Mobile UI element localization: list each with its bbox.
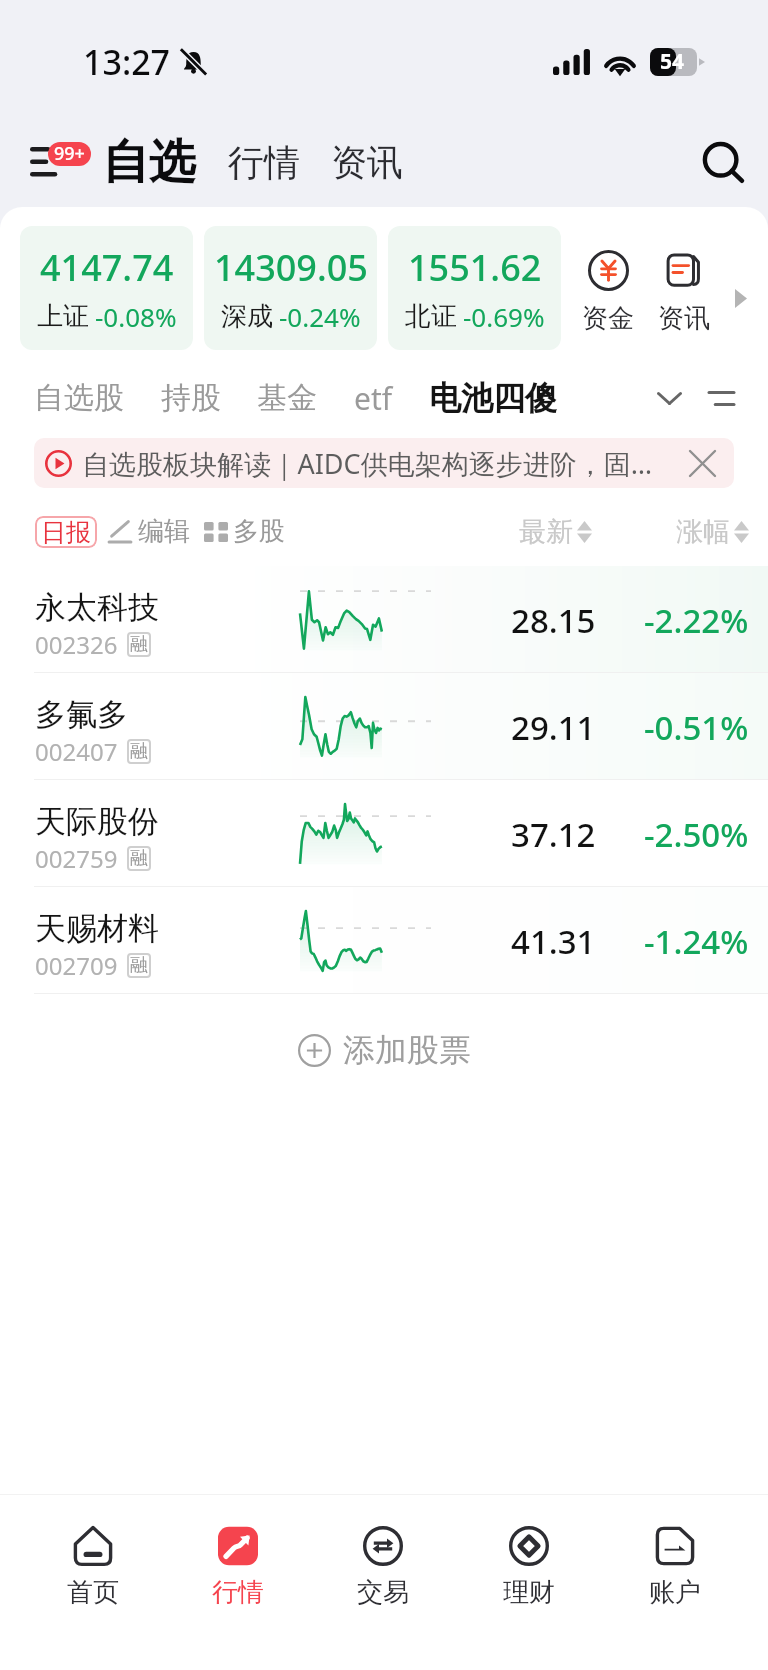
button[interactable]: Close (682, 443, 722, 483)
button[interactable]: 4147.74 (20, 226, 193, 350)
staticText: 14309.05 (214, 243, 368, 292)
staticText: -0.69% (463, 299, 545, 334)
button[interactable]: 涨幅 (676, 515, 749, 549)
button[interactable]: 天际股份 (0, 780, 768, 887)
button[interactable]: 资金 (571, 250, 645, 335)
staticText: 自选股板块解读｜AIDC供电架构逐步进阶，固… (82, 445, 652, 482)
staticText: 添加股票 (343, 1030, 471, 1070)
staticText: -0.08% (95, 299, 177, 334)
button[interactable]: 资讯 (331, 139, 403, 184)
button[interactable]: 行情 (165, 1526, 310, 1609)
button[interactable]: 理财 (456, 1526, 602, 1609)
staticText: 账户 (649, 1576, 701, 1609)
staticText: 4147.74 (40, 243, 174, 292)
staticText: 首页 (67, 1576, 119, 1609)
button[interactable]: 自选股 (34, 379, 124, 417)
staticText: 002326 (35, 628, 118, 661)
button[interactable]: 多氟多 (0, 673, 768, 780)
staticText: 编辑 (138, 515, 190, 548)
button[interactable]: 最新 (519, 515, 592, 549)
staticText: 多氟多 (35, 695, 128, 734)
button[interactable]: 天赐材料 (0, 887, 768, 994)
staticText: -2.50% (644, 812, 749, 857)
staticText: 资金 (582, 302, 634, 335)
staticText: 上证 (37, 300, 89, 333)
button[interactable]: 自选 (102, 132, 196, 191)
staticText: 融 (130, 847, 148, 870)
staticText: 002709 (35, 949, 118, 982)
staticText: 北证 (405, 300, 457, 333)
button[interactable]: Menu (30, 136, 95, 188)
staticText: 37.12 (511, 812, 596, 857)
staticText: 资讯 (658, 302, 710, 335)
button[interactable]: 日报 (35, 516, 97, 548)
button[interactable]: 账户 (602, 1526, 748, 1609)
button[interactable]: etf (354, 378, 393, 419)
button[interactable]: 添加股票 (0, 994, 768, 1106)
button[interactable]: 首页 (20, 1526, 165, 1609)
staticText: 永太科技 (35, 588, 159, 627)
staticText: 99+ (54, 142, 85, 165)
staticText: 融 (130, 740, 148, 763)
button[interactable]: Expand (647, 376, 691, 420)
staticText: 41.31 (511, 919, 596, 964)
button[interactable]: 14309.05 (204, 226, 377, 350)
staticText: 28.15 (511, 598, 596, 643)
staticText: 理财 (503, 1576, 555, 1609)
button[interactable]: 1551.62 (388, 226, 561, 350)
staticText: 涨幅 (676, 515, 730, 549)
staticText: 融 (130, 954, 148, 977)
staticText: 最新 (519, 515, 573, 549)
staticText: -1.24% (644, 919, 749, 964)
button[interactable]: 资讯 (647, 250, 721, 335)
staticText: -0.51% (644, 705, 749, 750)
staticText: 行情 (212, 1576, 264, 1609)
button[interactable]: 多股 (204, 515, 285, 548)
button[interactable]: Search (694, 134, 754, 194)
staticText: 002407 (35, 735, 118, 768)
staticText: 1551.62 (408, 243, 542, 292)
button[interactable]: 电池四傻 (429, 378, 557, 418)
staticText: 天际股份 (35, 802, 159, 841)
button[interactable]: 编辑 (107, 515, 190, 548)
button[interactable]: 持股 (161, 379, 221, 417)
staticText: 13:27 (83, 39, 171, 85)
staticText: 002759 (35, 842, 118, 875)
staticText: 天赐材料 (35, 909, 159, 948)
staticText: -0.24% (279, 299, 361, 334)
button[interactable]: 永太科技 (0, 566, 768, 673)
button[interactable]: 自选股板块解读｜AIDC供电架构逐步进阶，固… (34, 438, 734, 488)
staticText: 融 (130, 633, 148, 656)
staticText: 54 (660, 47, 685, 75)
staticText: 深成 (221, 300, 273, 333)
button[interactable]: 行情 (228, 139, 300, 184)
staticText: 日报 (41, 517, 91, 548)
staticText: 多股 (233, 515, 285, 548)
button[interactable]: Sort options (699, 376, 743, 420)
staticText: -2.22% (644, 598, 749, 643)
staticText: 交易 (357, 1576, 409, 1609)
staticText: 29.11 (511, 705, 596, 750)
button[interactable]: 基金 (257, 379, 317, 417)
button[interactable]: 交易 (310, 1526, 456, 1609)
